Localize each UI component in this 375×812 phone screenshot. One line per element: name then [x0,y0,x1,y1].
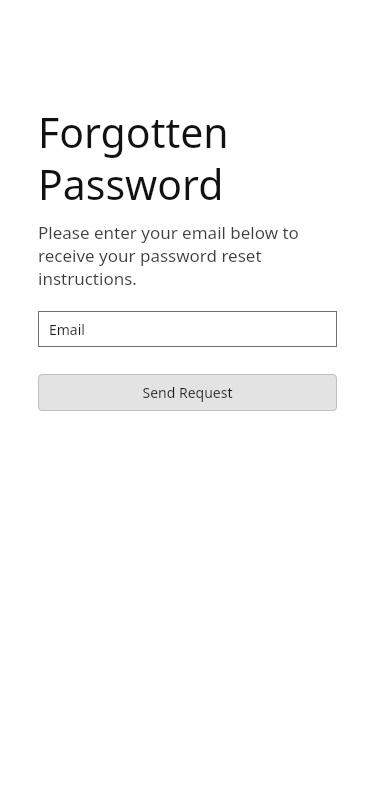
button[interactable]: Email [38,311,337,347]
staticText: Email [49,320,85,339]
staticText: Send Request [142,383,233,402]
staticText: Forgotten Password [38,104,229,212]
button[interactable]: Send Request [38,374,337,411]
staticText: Please enter your email below to receive… [38,221,337,290]
